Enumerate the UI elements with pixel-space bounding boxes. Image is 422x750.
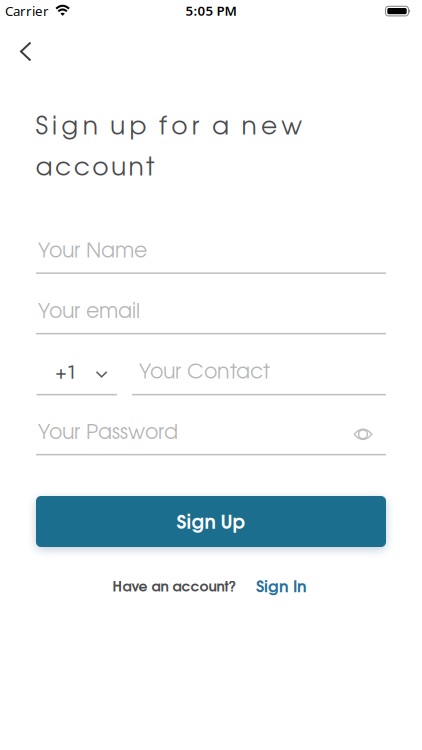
staticText: f bbox=[159, 116, 167, 139]
staticText: 5:05 PM bbox=[185, 2, 236, 19]
staticText: Your Contact bbox=[139, 363, 270, 382]
staticText: a bbox=[212, 116, 229, 139]
staticText: e bbox=[261, 116, 277, 139]
staticText: n bbox=[83, 116, 98, 139]
button[interactable]: Sign Up bbox=[36, 496, 386, 547]
staticText: r bbox=[192, 116, 200, 139]
staticText: g bbox=[61, 116, 78, 139]
staticText: Your Password bbox=[38, 424, 178, 443]
staticText: a bbox=[35, 157, 52, 180]
staticText: w bbox=[281, 116, 302, 139]
staticText: +1 bbox=[55, 358, 76, 386]
staticText: S bbox=[35, 116, 47, 139]
staticText: o bbox=[92, 157, 108, 180]
button[interactable]: Show password bbox=[348, 422, 378, 446]
staticText: Carrier bbox=[5, 2, 49, 20]
staticText: n bbox=[241, 116, 256, 139]
staticText: i bbox=[52, 116, 57, 139]
button[interactable]: Sign In bbox=[256, 580, 307, 595]
staticText: c bbox=[74, 157, 90, 180]
staticText: Your Name bbox=[38, 242, 147, 261]
staticText: Sign Up bbox=[176, 515, 245, 532]
staticText: o bbox=[171, 116, 187, 139]
staticText: c bbox=[55, 157, 71, 180]
button[interactable]: Country code +1 bbox=[55, 358, 107, 386]
button[interactable]: Back bbox=[4, 29, 48, 73]
staticText: t bbox=[146, 157, 154, 180]
staticText: p bbox=[129, 116, 146, 139]
staticText: Have an account? bbox=[112, 581, 236, 594]
staticText: Sign In bbox=[256, 580, 307, 595]
staticText: u bbox=[111, 157, 126, 180]
staticText: Your email bbox=[38, 303, 140, 322]
staticText: u bbox=[110, 116, 125, 139]
staticText: n bbox=[128, 157, 143, 180]
